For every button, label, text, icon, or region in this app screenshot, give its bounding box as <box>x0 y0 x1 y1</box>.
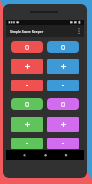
button[interactable]: 0 <box>11 41 43 53</box>
staticText: 0 <box>25 42 30 52</box>
button[interactable]: 0 <box>47 41 79 53</box>
button[interactable]: Decrease score <box>11 80 43 91</box>
button[interactable]: Increase score <box>47 117 79 132</box>
button[interactable]: 0 <box>47 98 79 110</box>
button[interactable]: Increase score <box>11 117 43 132</box>
staticText: 0 <box>61 99 66 109</box>
staticText: 0 <box>25 99 30 109</box>
button[interactable]: Decrease score <box>47 80 79 91</box>
button[interactable]: More options <box>75 25 83 37</box>
button[interactable]: Decrease score <box>47 138 79 149</box>
staticText: 0 <box>61 42 66 52</box>
button[interactable]: Increase score <box>47 59 79 74</box>
button[interactable]: 0 <box>11 98 43 110</box>
staticText: Simple Score Keeper <box>10 29 44 34</box>
button[interactable]: Decrease score <box>11 138 43 149</box>
button[interactable]: Increase score <box>11 59 43 74</box>
